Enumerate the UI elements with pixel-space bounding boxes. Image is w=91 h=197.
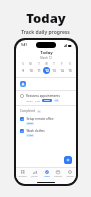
staticText: Reassess appointments <box>26 94 60 98</box>
staticText: 10 <box>29 69 33 73</box>
staticText: T <box>38 62 40 66</box>
button[interactable]: Completed <box>16 108 76 114</box>
staticText: A1 <box>55 99 58 102</box>
staticText: March 12 <box>40 56 52 60</box>
staticText: M <box>29 62 32 66</box>
button[interactable]: Profile <box>20 81 26 87</box>
staticText: Today <box>40 50 53 56</box>
button[interactable]: T <box>50 62 57 74</box>
staticText: 9 <box>22 69 24 73</box>
button[interactable]: Planning <box>52 170 63 178</box>
staticText: Setup remote office <box>26 117 54 121</box>
staticText: 09:00 <box>27 122 33 125</box>
staticText: Work <box>44 99 50 102</box>
button[interactable]: F <box>58 62 65 74</box>
staticText: T <box>53 62 55 66</box>
button[interactable]: M <box>27 62 34 74</box>
button[interactable]: Settings <box>64 170 75 178</box>
staticText: Today <box>44 175 50 178</box>
staticText: S <box>69 62 71 66</box>
button[interactable]: Journal <box>29 170 40 178</box>
staticText: W <box>45 62 48 66</box>
staticText: Journal <box>31 175 38 178</box>
staticText: 15 <box>68 69 72 73</box>
staticText: 2 <box>38 110 40 113</box>
staticText: 12 <box>45 69 49 73</box>
staticText: 14 <box>60 69 64 73</box>
staticText: 11:30 <box>27 134 33 137</box>
staticText: F <box>61 62 63 66</box>
staticText: 11 <box>37 69 41 73</box>
button[interactable]: S <box>66 62 73 74</box>
staticText: Wash clothes <box>26 129 45 133</box>
staticText: Settings <box>66 175 74 178</box>
staticText: Completed <box>20 109 35 113</box>
staticText: 15m <box>35 99 40 102</box>
staticText: S <box>22 62 24 66</box>
button[interactable]: Setup remote office <box>16 115 76 127</box>
button[interactable]: T <box>35 62 42 74</box>
button[interactable]: Wash clothes <box>16 127 76 139</box>
staticText: Planning <box>54 175 62 178</box>
button[interactable]: Reassess appointments <box>16 91 76 105</box>
button[interactable]: W <box>43 62 50 74</box>
staticText: Overview <box>18 175 27 178</box>
staticText: Track daily progress <box>21 29 70 36</box>
button[interactable]: Overview <box>17 170 28 178</box>
staticText: 09:00 <box>26 99 33 102</box>
button[interactable]: Today <box>41 170 52 178</box>
staticText: 13 <box>52 69 56 73</box>
button[interactable]: Add task <box>64 156 72 164</box>
staticText: 9:41 <box>21 43 27 47</box>
staticText: Today <box>26 9 66 27</box>
button[interactable]: S <box>19 62 26 74</box>
